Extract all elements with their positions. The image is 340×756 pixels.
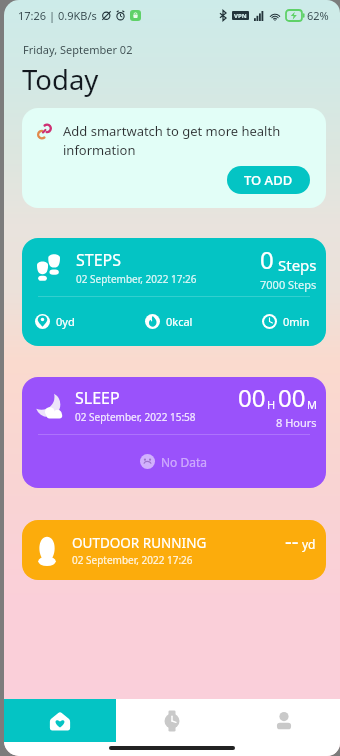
button[interactable]: Home [4, 699, 116, 742]
button[interactable]: OUTDOOR RUNNING [22, 520, 326, 580]
staticText: yd [302, 536, 316, 552]
button[interactable]: STEPS [22, 238, 326, 346]
staticText: 62% [307, 8, 329, 23]
staticText: Steps [278, 255, 317, 275]
staticText: 0yd [56, 314, 75, 329]
button[interactable]: Profile [228, 699, 340, 742]
staticText: 0 [260, 243, 274, 276]
staticText: 0kcal [166, 314, 193, 329]
staticText: 02 September, 2022 17:26 [72, 553, 193, 567]
staticText: 17:26 | 0.9KB/s [18, 8, 97, 23]
staticText: 00 [238, 381, 266, 414]
staticText: 7000 Steps [260, 277, 317, 292]
staticText: VPN [234, 12, 247, 20]
staticText: M [307, 397, 317, 412]
staticText: Add smartwatch to get more health inform… [63, 122, 314, 159]
staticText: 02 September, 2022 17:26 [76, 272, 197, 286]
button[interactable]: SLEEP [22, 377, 326, 488]
staticText: TO ADD [244, 171, 293, 189]
button[interactable]: TO ADD [227, 166, 310, 194]
staticText: Friday, September 02 [23, 42, 133, 57]
staticText: 0min [283, 314, 310, 329]
staticText: 02 September, 2022 15:58 [75, 410, 196, 424]
staticText: OUTDOOR RUNNING [72, 534, 207, 552]
staticText: H [267, 397, 276, 412]
button[interactable]: Devices [116, 699, 228, 742]
staticText: 00 [278, 381, 306, 414]
staticText: STEPS [76, 249, 122, 271]
staticText: -- [285, 527, 299, 556]
staticText: No Data [161, 454, 208, 470]
staticText: SLEEP [75, 387, 120, 409]
staticText: 8 Hours [276, 415, 317, 430]
staticText: Today [22, 61, 99, 98]
button[interactable]: Add smartwatch to get more health inform… [22, 108, 326, 208]
